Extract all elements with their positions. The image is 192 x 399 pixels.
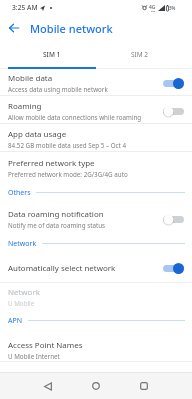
button[interactable]: Back (0, 15, 28, 41)
button[interactable]: Switch on (163, 262, 184, 275)
staticText: Network (8, 287, 40, 298)
staticText: Automatically select network (8, 263, 116, 274)
button[interactable]: Home (72, 373, 120, 399)
staticText: Network (8, 239, 37, 249)
staticText: Preferred network mode: 2G/3G/4G auto (8, 170, 128, 179)
staticText: Notify me of data roaming status (8, 221, 106, 230)
staticText: Access Point Names (8, 340, 83, 351)
button[interactable]: Network (0, 283, 192, 309)
button[interactable]: Data roaming notification (0, 204, 192, 232)
button[interactable]: SIM 2 (96, 41, 184, 67)
button[interactable]: Mobile data (0, 69, 192, 95)
staticText: SIM 2 (131, 50, 149, 59)
staticText: App data usage (8, 129, 67, 140)
staticText: U Mobile (8, 299, 35, 308)
button[interactable]: App data usage (0, 124, 192, 151)
button[interactable]: Access Point Names (0, 332, 192, 361)
staticText: Mobile network (30, 21, 113, 36)
staticText: 3% (169, 5, 176, 11)
button[interactable]: Preferred network type (0, 152, 192, 181)
staticText: 3:25 AM (12, 3, 38, 12)
staticText: Access data using mobile network (8, 85, 108, 94)
staticText: Roaming (8, 101, 42, 112)
button[interactable]: SIM 1 (8, 41, 96, 67)
staticText: Mobile data (8, 73, 53, 84)
button[interactable]: Back (24, 373, 72, 399)
button[interactable]: Recent apps (120, 373, 168, 399)
button[interactable]: Switch on (163, 77, 184, 90)
button[interactable]: Automatically select network (0, 255, 192, 282)
staticText: SIM 1 (43, 50, 61, 59)
staticText: 84.52 GB mobile data used Sep 5 – Oct 4 (8, 141, 126, 150)
staticText: APN (8, 316, 23, 326)
staticText: Data roaming notification (8, 209, 104, 220)
staticText: U Mobile Internet (8, 352, 60, 361)
button[interactable]: Switch off (163, 213, 184, 226)
staticText: 4G (149, 4, 156, 11)
staticText: Allow mobile data connections while roam… (8, 113, 142, 122)
staticText: Preferred network type (8, 158, 95, 169)
button[interactable]: Roaming (0, 96, 192, 123)
staticText: Others (8, 188, 31, 198)
button[interactable]: Switch off (163, 105, 184, 118)
